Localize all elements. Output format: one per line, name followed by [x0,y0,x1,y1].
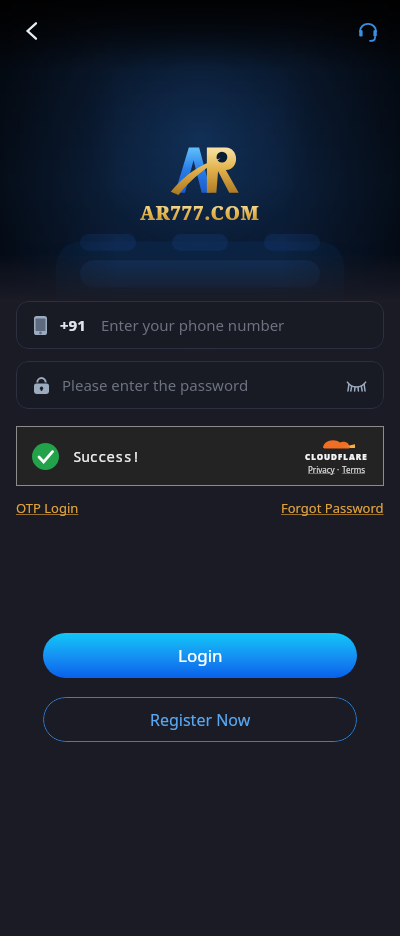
button[interactable]: Register Now [43,697,357,742]
button[interactable]: Success! [16,426,384,486]
button[interactable]: Terms [342,464,366,475]
staticText: Enter your phone number [101,315,285,335]
staticText: · [335,464,342,475]
staticText: CLOUDFLARE [305,451,368,462]
staticText: Login [178,644,223,667]
button[interactable]: OTP Login [16,497,79,519]
button[interactable]: +91 [16,301,384,349]
staticText: Please enter the password [62,375,249,395]
button[interactable]: Back [12,11,52,51]
staticText: AR777.COM [140,200,260,226]
button[interactable]: Customer support [348,11,388,51]
button[interactable]: Please enter the password [16,361,384,409]
button[interactable]: Forgot Password [281,497,384,519]
staticText: +91 [60,315,86,335]
button[interactable]: Privacy [308,464,335,475]
button[interactable]: Show password [342,371,370,399]
button[interactable]: Login [43,633,357,678]
staticText: Register Now [150,709,251,731]
staticText: Success! [73,447,141,466]
